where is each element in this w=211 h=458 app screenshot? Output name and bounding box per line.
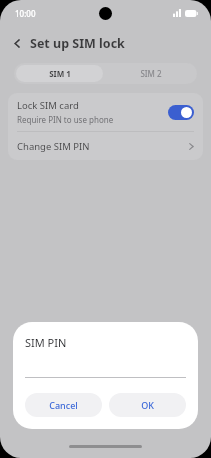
staticText: 10:00 (15, 8, 36, 19)
staticText: Lock SIM card (17, 99, 79, 112)
staticText: Set up SIM lock (30, 35, 125, 52)
button[interactable]: OK (109, 393, 186, 417)
button[interactable]: Lock SIM card toggle, on (168, 105, 194, 120)
button[interactable]: Lock SIM card (8, 93, 203, 131)
staticText: SIM 1 (49, 68, 71, 79)
button[interactable]: SIM 1 (16, 65, 103, 82)
staticText: SIM 2 (140, 68, 162, 79)
button[interactable]: Cancel (25, 393, 102, 417)
button[interactable]: SIM 2 (105, 63, 197, 84)
staticText: SIM PIN (25, 335, 67, 350)
staticText: Cancel (49, 399, 78, 411)
staticText: Change SIM PIN (17, 140, 189, 153)
staticText: Require PIN to use phone (17, 114, 114, 125)
staticText: OK (141, 399, 154, 411)
button[interactable]: Change SIM PIN (8, 132, 203, 160)
button[interactable]: Back (8, 34, 27, 53)
